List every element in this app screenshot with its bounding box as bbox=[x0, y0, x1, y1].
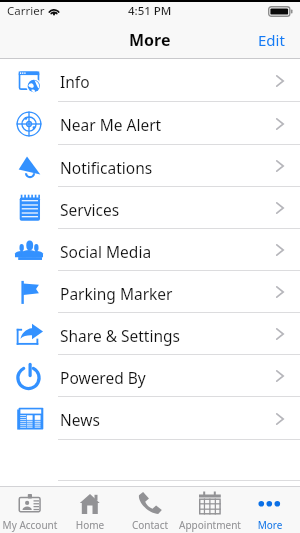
staticText: Notifications bbox=[60, 157, 153, 178]
button[interactable]: My Account bbox=[0, 487, 60, 533]
button[interactable]: Services bbox=[0, 187, 300, 229]
button[interactable]: Parking Marker bbox=[0, 271, 300, 313]
button[interactable]: Near Me Alert bbox=[0, 102, 300, 145]
button[interactable]: More bbox=[240, 487, 300, 533]
button[interactable]: Powered By bbox=[0, 355, 300, 397]
button[interactable]: Contact bbox=[120, 487, 180, 533]
staticText: Appointment bbox=[170, 518, 250, 532]
staticText: Home bbox=[50, 518, 130, 532]
staticText: Carrier bbox=[7, 3, 45, 19]
button[interactable]: Appointment bbox=[180, 487, 240, 533]
staticText: Parking Marker bbox=[60, 283, 173, 304]
staticText: News bbox=[60, 409, 100, 430]
staticText: Social Media bbox=[60, 241, 152, 262]
staticText: More bbox=[129, 29, 171, 51]
button[interactable]: Social Media bbox=[0, 229, 300, 271]
button[interactable]: News bbox=[0, 397, 300, 440]
staticText: Near Me Alert bbox=[60, 114, 162, 135]
button[interactable]: Notifications bbox=[0, 145, 300, 187]
staticText: Services bbox=[60, 199, 120, 220]
staticText: Share & Settings bbox=[60, 325, 181, 346]
staticText: Edit bbox=[258, 30, 285, 50]
staticText: More bbox=[230, 518, 300, 532]
button[interactable]: Info bbox=[0, 59, 300, 102]
button[interactable]: Share & Settings bbox=[0, 313, 300, 355]
staticText: 4:51 PM bbox=[128, 3, 172, 19]
staticText: Contact bbox=[110, 518, 190, 532]
staticText: My Account bbox=[0, 518, 70, 532]
button[interactable]: Home bbox=[60, 487, 120, 533]
staticText: Powered By bbox=[60, 367, 146, 388]
button[interactable]: Edit bbox=[244, 22, 300, 58]
staticText: Info bbox=[60, 71, 90, 92]
